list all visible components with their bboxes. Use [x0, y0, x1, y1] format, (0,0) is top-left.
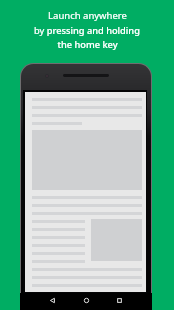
button[interactable]: Recent apps: [111, 292, 128, 309]
button[interactable]: Back: [44, 292, 61, 309]
staticText: the home key: [57, 38, 118, 51]
staticText: Launch anywhere: [48, 9, 127, 22]
staticText: by pressing and holding: [34, 24, 140, 37]
button[interactable]: Home: [78, 292, 95, 309]
